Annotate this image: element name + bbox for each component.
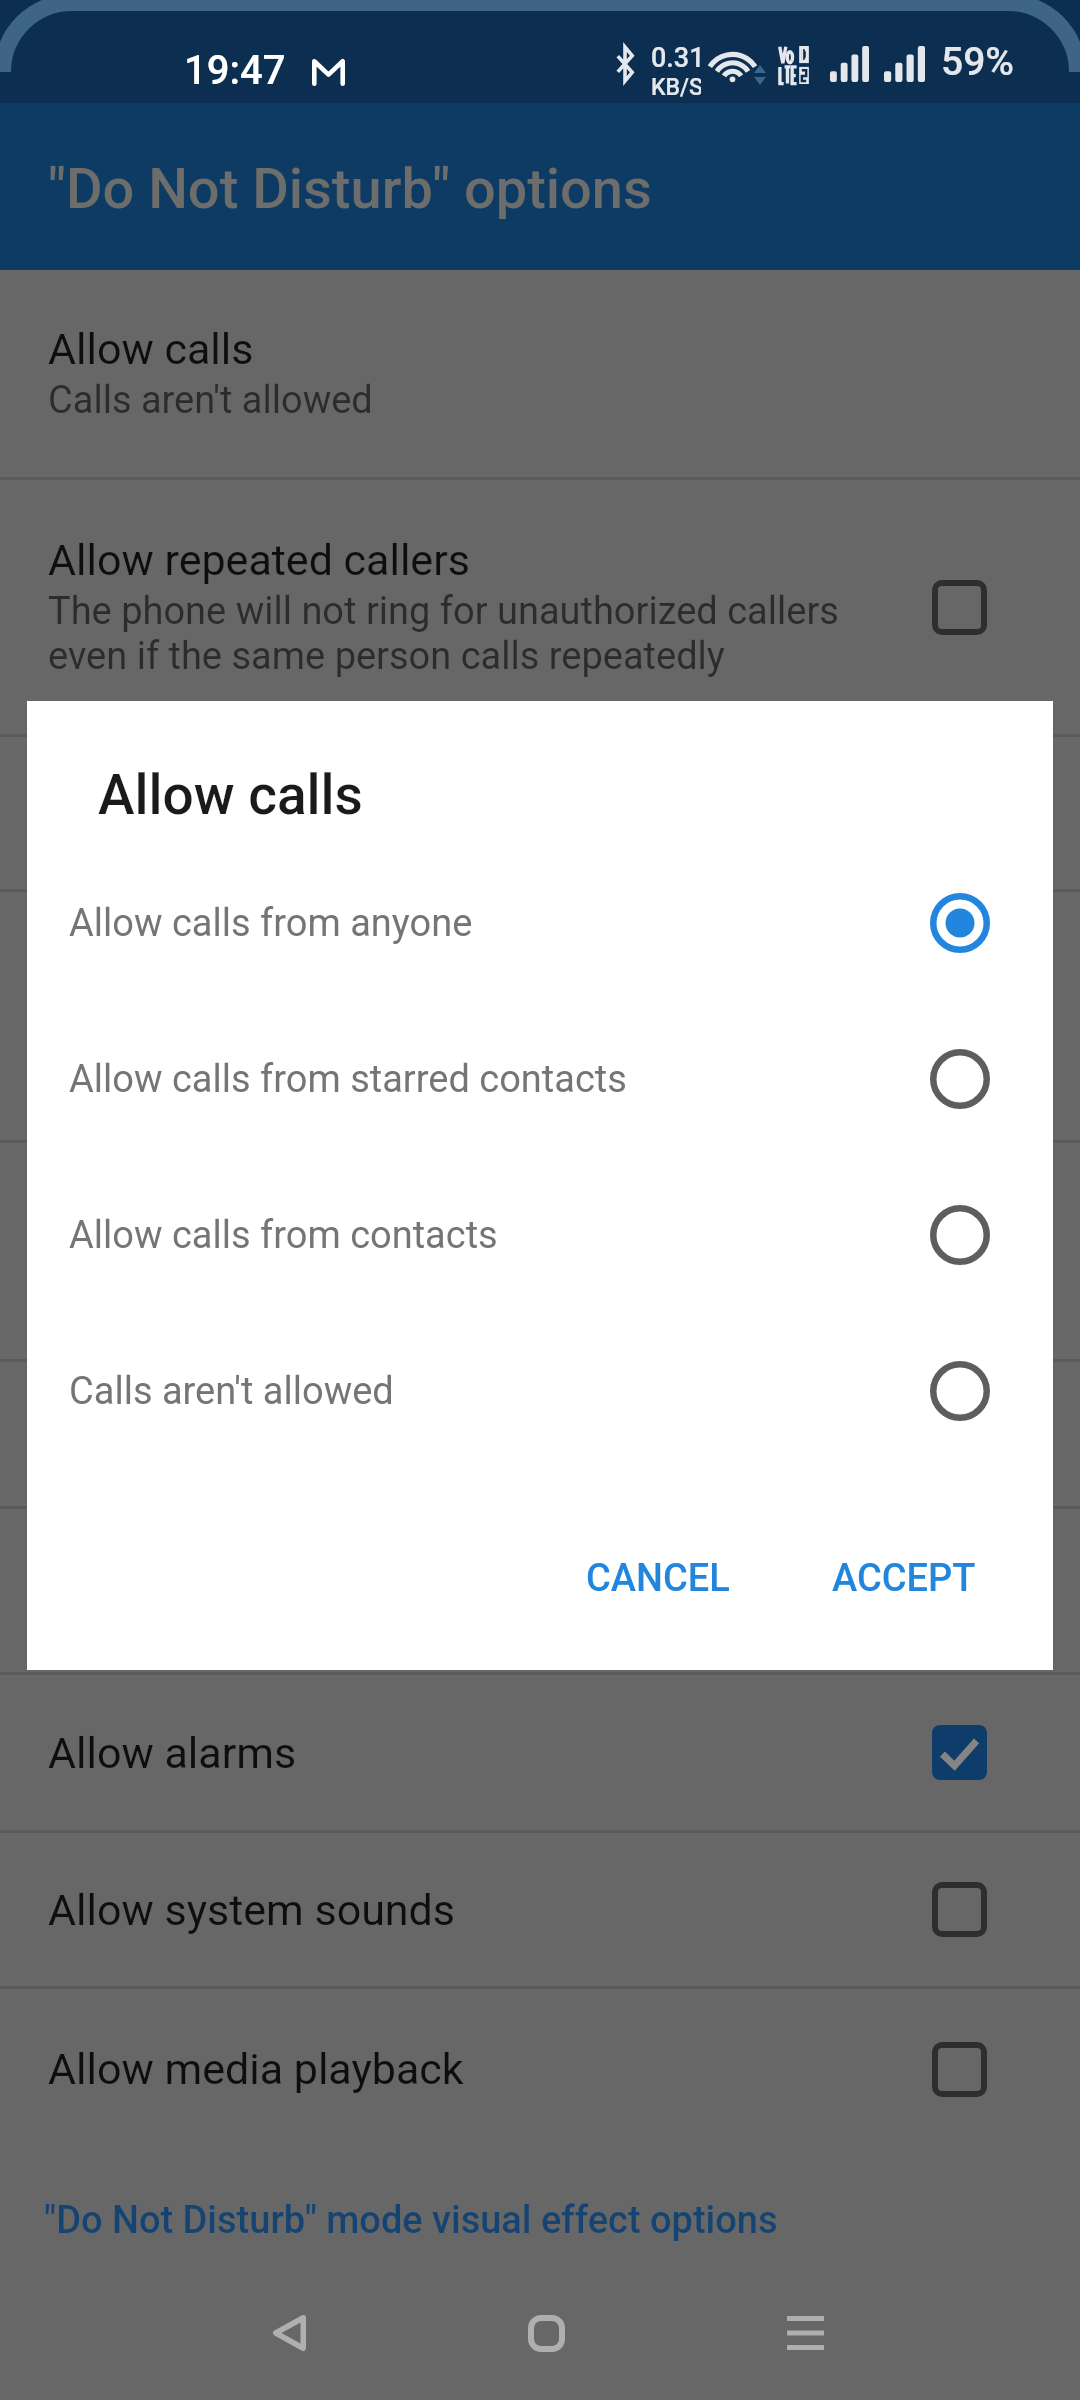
staticText: CANCEL	[586, 1556, 730, 1601]
staticText: 19:47	[184, 47, 286, 94]
button[interactable]: ACCEPT	[810, 1538, 998, 1619]
staticText: Calls aren't allowed	[48, 378, 373, 423]
staticText: Allow media playback	[48, 2044, 932, 2094]
button[interactable]: Recent apps	[745, 2273, 865, 2393]
button[interactable]: Allow media playback	[0, 1989, 1080, 2149]
button[interactable]: Allow calls from contacts	[27, 1157, 1053, 1313]
staticText: Allow calls	[48, 324, 254, 374]
staticText: Allow calls from starred contacts	[69, 1057, 928, 1102]
button[interactable]	[0, 1362, 1080, 1506]
button[interactable]: Calls aren't allowed	[27, 1313, 1053, 1469]
staticText: Allow alarms	[48, 1728, 932, 1778]
staticText: Allow calls from contacts	[69, 1213, 928, 1258]
staticText: Allow repeated callers	[48, 535, 470, 585]
staticText: Allow system sounds	[48, 1885, 932, 1935]
staticText: Allow calls from anyone	[69, 901, 928, 946]
staticText: Calls aren't allowed	[69, 1369, 928, 1414]
button[interactable]: Back	[228, 2273, 348, 2393]
button[interactable]	[0, 1143, 1080, 1359]
button[interactable]: Allow system sounds	[0, 1833, 1080, 1986]
staticText: Allow calls	[98, 763, 363, 827]
staticText: The phone will not ring for unauthorized…	[48, 589, 839, 634]
staticText: even if the same person calls repeatedly	[48, 634, 725, 679]
button[interactable]	[0, 892, 1080, 1140]
button[interactable]: "Do Not Disturb" mode visual effect opti…	[0, 2149, 1080, 2301]
staticText: KB/S	[651, 74, 701, 99]
button[interactable]: Home	[486, 2273, 606, 2393]
staticText: "Do Not Disturb" mode visual effect opti…	[44, 2198, 778, 2243]
button[interactable]: CANCEL	[564, 1538, 752, 1619]
button[interactable]: Allow repeated callers	[0, 480, 1080, 734]
button[interactable]: Allow calls from starred contacts	[27, 1001, 1053, 1157]
button[interactable]: Allow calls	[0, 270, 1080, 477]
button[interactable]: Allow calls from anyone	[27, 845, 1053, 1001]
staticText: ACCEPT	[832, 1556, 976, 1601]
staticText: 0.31	[651, 42, 701, 74]
button[interactable]	[0, 737, 1080, 889]
button[interactable]	[0, 1509, 1080, 1672]
staticText: 59%	[941, 39, 1015, 85]
staticText: "Do Not Disturb" options	[48, 156, 652, 222]
button[interactable]: Allow alarms	[0, 1675, 1080, 1830]
